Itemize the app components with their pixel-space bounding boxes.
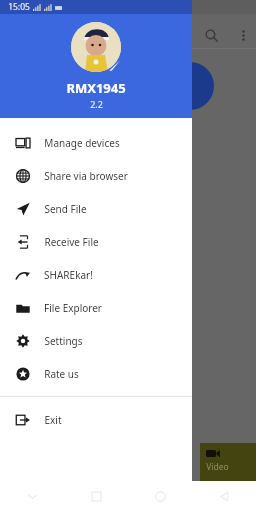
button[interactable]: Share via browser xyxy=(0,159,192,192)
staticText: Video xyxy=(206,461,229,473)
staticText: 15:05 xyxy=(8,1,30,13)
button[interactable]: Manage devices xyxy=(0,126,192,159)
staticText: Manage devices xyxy=(44,136,120,150)
button[interactable]: More options xyxy=(230,22,256,48)
staticText: Settings xyxy=(44,334,83,348)
staticText: File Explorer xyxy=(44,301,102,315)
button[interactable]: Search xyxy=(198,22,224,48)
button[interactable]: Exit xyxy=(0,403,192,436)
button[interactable]: Settings xyxy=(0,324,192,357)
button[interactable]: SHAREkar! xyxy=(0,258,192,291)
staticText: Receive File xyxy=(44,235,99,249)
button[interactable]: Receive File xyxy=(0,225,192,258)
button[interactable]: Rate us xyxy=(0,357,192,390)
staticText: Rate us xyxy=(44,367,79,381)
staticText: RMX1945 xyxy=(66,79,126,97)
staticText: Share via browser xyxy=(44,169,128,183)
staticText: 2.2 xyxy=(90,98,103,110)
button[interactable]: Send File xyxy=(0,192,192,225)
staticText: SHAREkar! xyxy=(44,268,93,282)
button[interactable]: File Explorer xyxy=(0,291,192,324)
button[interactable]: Video xyxy=(200,443,256,481)
staticText: Send File xyxy=(44,202,87,216)
button[interactable]: Profile photo xyxy=(71,22,121,72)
staticText: Exit xyxy=(44,413,62,427)
